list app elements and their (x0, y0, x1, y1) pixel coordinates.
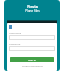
staticText: Username (9, 31, 22, 34)
button[interactable] (9, 35, 55, 40)
staticText: Fiesta (27, 4, 38, 9)
button[interactable]: Sign in (10, 57, 54, 62)
staticText: Forgot password? (22, 64, 43, 67)
staticText: Plane files (25, 9, 40, 13)
staticText: Sign in (28, 58, 36, 61)
button[interactable] (9, 46, 55, 51)
staticText: Password (9, 42, 21, 45)
